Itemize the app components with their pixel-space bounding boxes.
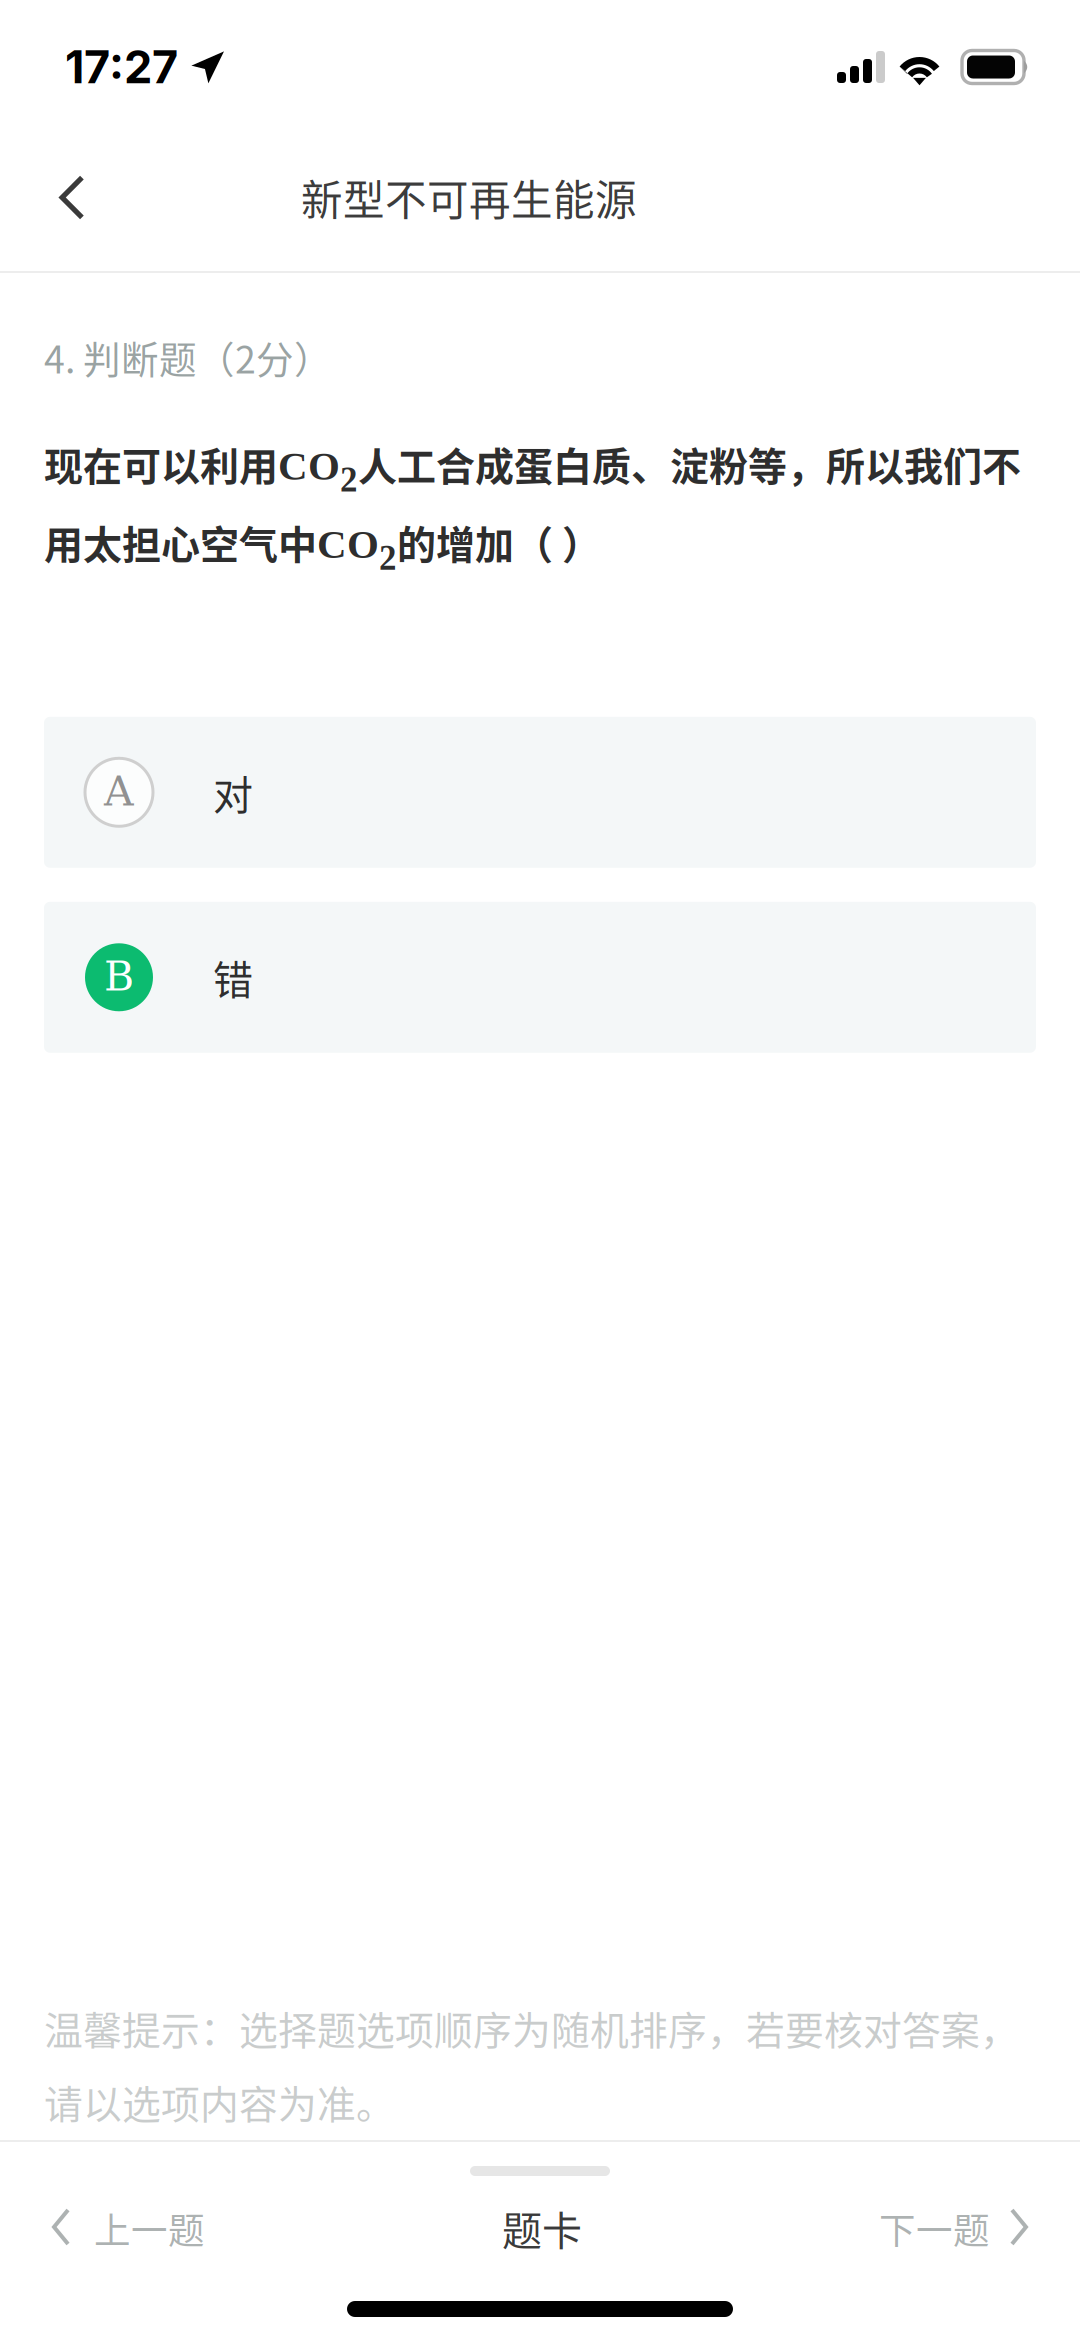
button[interactable]: 下一题: [827, 2178, 1080, 2278]
staticText: 温馨提示：选择题选项顺序为随机排序，若要核对答案， 请以选项内容为准。: [44, 2000, 1019, 2130]
staticText: 对: [213, 763, 253, 821]
staticText: 新型不可再生能源: [301, 167, 637, 228]
button[interactable]: B: [44, 902, 1036, 1053]
button[interactable]: 上一题: [0, 2178, 257, 2278]
staticText: 4. 判断题（2分）: [44, 330, 332, 384]
staticText: 上一题: [94, 2202, 205, 2254]
button[interactable]: A: [44, 717, 1036, 868]
button[interactable]: 题卡: [454, 2178, 630, 2278]
staticText: A: [104, 767, 134, 815]
staticText: 错: [213, 948, 253, 1006]
staticText: B: [104, 952, 134, 1000]
staticText: 现在可以利用CO2人工合成蛋白质、淀粉等，所以我们不用太担心空气中CO2的增加（…: [44, 436, 1021, 577]
button[interactable]: 返回: [0, 143, 118, 261]
staticText: 17:27: [65, 40, 178, 94]
staticText: 下一题: [879, 2202, 990, 2254]
staticText: 题卡: [502, 2199, 582, 2257]
